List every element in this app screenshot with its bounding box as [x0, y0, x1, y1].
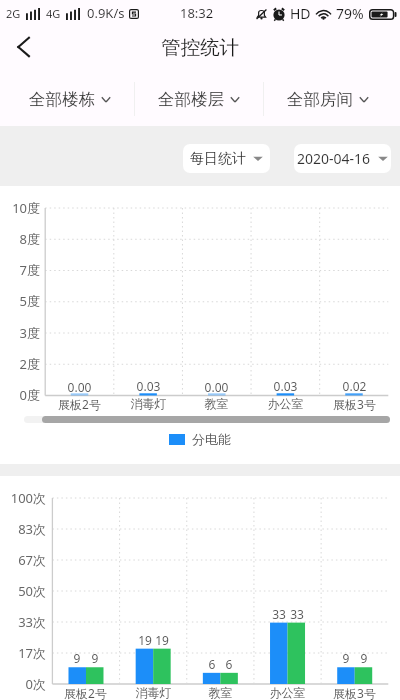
staticText: 展板2号: [45, 396, 114, 412]
button[interactable]: 全部楼栋: [5, 72, 134, 126]
staticText: 消毒灯: [114, 396, 183, 411]
staticText: 0.03: [114, 378, 183, 394]
staticText: 19: [153, 632, 171, 648]
staticText: 0.9K/s: [87, 4, 125, 22]
staticText: 分电能: [192, 431, 231, 447]
staticText: 9: [337, 650, 355, 666]
staticText: 2G: [6, 6, 21, 21]
button[interactable]: 2020-04-16: [294, 144, 391, 173]
staticText: 9: [355, 650, 373, 666]
staticText: 8度: [0, 230, 40, 248]
staticText: 0.02: [320, 378, 389, 394]
staticText: 全部楼栋: [29, 89, 95, 110]
staticText: 33次: [0, 613, 46, 631]
staticText: 管控统计: [161, 35, 239, 60]
staticText: 全部楼层: [158, 89, 224, 110]
staticText: 全部房间: [287, 89, 353, 110]
staticText: 0.00: [182, 379, 251, 395]
staticText: 教室: [187, 685, 254, 700]
staticText: 67次: [0, 551, 46, 569]
staticText: 79%: [336, 4, 364, 23]
button[interactable]: Back: [5, 29, 41, 65]
staticText: 办公室: [254, 685, 321, 700]
staticText: 每日统计: [190, 150, 246, 168]
staticText: 2度: [0, 355, 40, 373]
button[interactable]: 全部楼层: [135, 72, 263, 126]
staticText: 50次: [0, 582, 46, 600]
staticText: HD: [290, 4, 311, 23]
staticText: 3度: [0, 324, 40, 342]
staticText: 展板2号: [52, 685, 119, 700]
staticText: 100次: [0, 489, 46, 507]
staticText: 6: [203, 656, 221, 672]
staticText: 17次: [0, 644, 46, 662]
staticText: 33: [288, 606, 306, 622]
staticText: 5度: [0, 292, 40, 310]
staticText: 83次: [0, 520, 46, 538]
staticText: 9: [86, 650, 104, 666]
staticText: 0.00: [45, 379, 114, 395]
button[interactable]: 全部房间: [264, 72, 392, 126]
staticText: 10度: [0, 199, 40, 217]
staticText: 展板3号: [321, 685, 388, 700]
staticText: 办公室: [251, 396, 320, 411]
staticText: 4G: [46, 6, 61, 21]
staticText: 19: [136, 632, 154, 648]
staticText: 0度: [0, 386, 40, 404]
staticText: 18:32: [180, 4, 214, 22]
staticText: 消毒灯: [120, 685, 187, 700]
staticText: 6: [220, 656, 238, 672]
button[interactable]: 每日统计: [183, 144, 270, 173]
staticText: 0.03: [251, 378, 320, 394]
staticText: 2020-04-16: [297, 149, 371, 168]
staticText: 教室: [182, 396, 251, 411]
staticText: 0次: [0, 675, 46, 693]
staticText: 9: [68, 650, 86, 666]
staticText: 7度: [0, 261, 40, 279]
staticText: 33: [270, 606, 288, 622]
staticText: 展板3号: [320, 396, 389, 412]
